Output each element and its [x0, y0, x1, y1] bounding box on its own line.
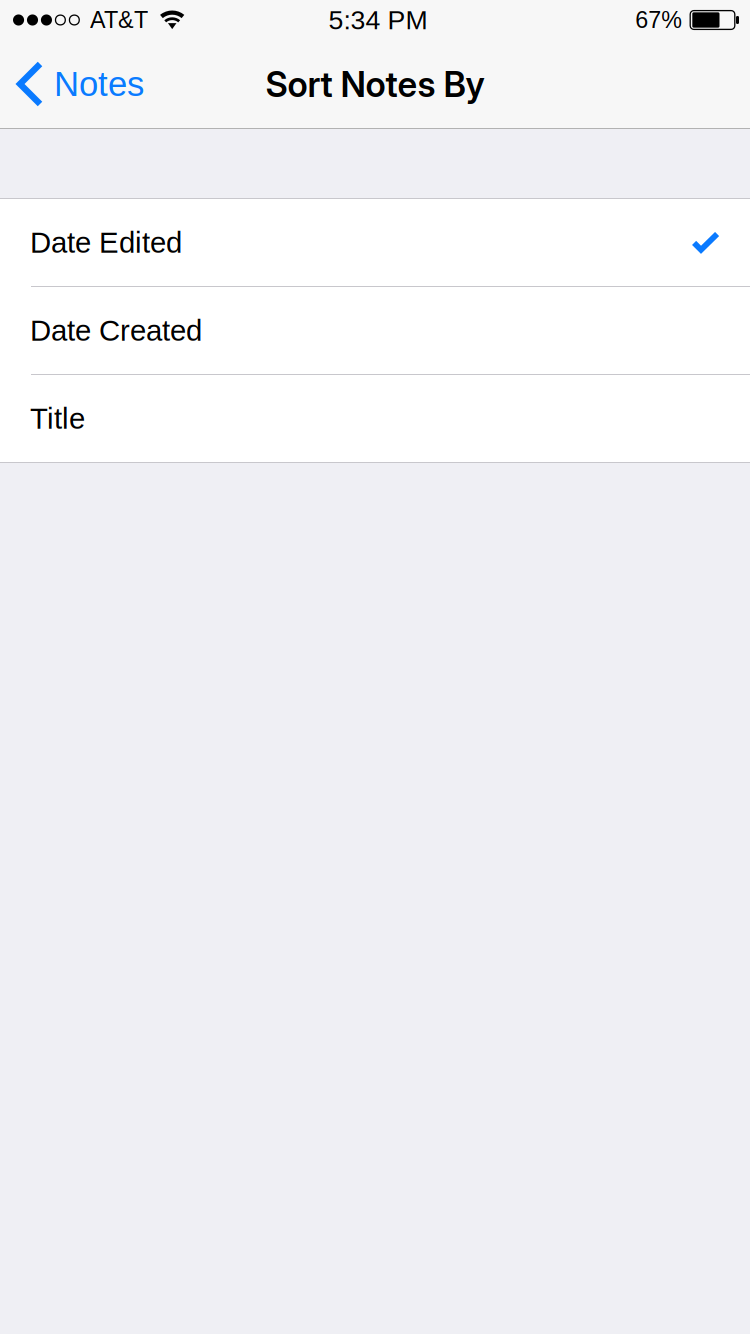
button[interactable]: Notes — [0, 40, 164, 128]
staticText: Date Edited — [30, 226, 182, 259]
staticText: Sort Notes By — [265, 63, 484, 105]
staticText: Date Created — [30, 314, 202, 347]
staticText: AT&T — [90, 7, 148, 33]
staticText: Notes — [54, 65, 144, 103]
button[interactable]: Title — [0, 375, 750, 462]
staticText: 67% — [635, 7, 682, 33]
button[interactable]: Date Created — [0, 287, 750, 374]
staticText: Title — [30, 402, 85, 435]
staticText: 5:34 PM — [328, 5, 427, 35]
button[interactable]: Date Edited — [0, 199, 750, 286]
